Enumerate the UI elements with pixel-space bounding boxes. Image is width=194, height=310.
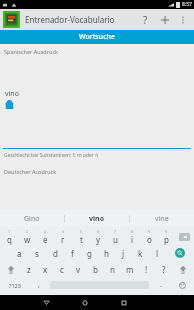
staticText: Wortsuche	[79, 32, 116, 42]
staticText: p	[164, 234, 169, 245]
staticText: 0	[165, 229, 168, 234]
button[interactable]: Wortsuche	[0, 30, 194, 44]
button[interactable]: 9	[141, 229, 158, 245]
button[interactable]: b	[87, 261, 104, 277]
staticText: h	[104, 248, 109, 259]
button[interactable]: 6	[90, 229, 107, 245]
button[interactable]: g	[81, 245, 98, 261]
button[interactable]: h	[98, 245, 115, 261]
button[interactable]: f	[64, 245, 81, 261]
staticText: 4	[62, 229, 65, 234]
button[interactable]: !	[138, 261, 155, 277]
staticText: 2	[26, 229, 29, 234]
staticText: s	[35, 248, 39, 259]
button[interactable]: .	[151, 277, 170, 293]
staticText: vino	[5, 89, 19, 99]
button[interactable]: 1	[0, 229, 18, 245]
button[interactable]: Back	[34, 295, 58, 310]
button[interactable]: z	[21, 261, 37, 277]
staticText: ?123	[9, 282, 21, 289]
staticText: Geschlecht bei Substantiven: f, m oder n	[4, 152, 99, 159]
button[interactable]: ,	[29, 277, 48, 293]
button[interactable]: n	[104, 261, 121, 277]
staticText: ?	[143, 13, 148, 27]
staticText: vine	[155, 214, 169, 224]
staticText: k	[138, 248, 143, 259]
staticText: Gino	[24, 214, 40, 224]
staticText: ,	[38, 280, 40, 290]
button[interactable]: l	[149, 245, 166, 261]
button[interactable]: 0	[158, 229, 175, 245]
staticText: 7	[114, 229, 117, 234]
button[interactable]: Emoji	[170, 277, 194, 293]
staticText: j	[122, 248, 125, 259]
staticText: c	[60, 264, 64, 275]
staticText: Deutscher Ausdruck	[4, 168, 57, 175]
button[interactable]: Search	[166, 245, 194, 261]
button[interactable]: 2	[18, 229, 36, 245]
staticText: l	[156, 248, 159, 259]
button[interactable]: Recent apps	[112, 295, 136, 310]
button[interactable]: Gino	[0, 210, 64, 227]
button[interactable]: a	[10, 245, 28, 261]
button[interactable]: ?123	[0, 277, 29, 293]
staticText: 1	[8, 229, 11, 234]
button[interactable]: Help	[135, 10, 155, 30]
button[interactable]: m	[121, 261, 138, 277]
button[interactable]: d	[46, 245, 64, 261]
button[interactable]: ?	[155, 261, 172, 277]
staticText: m	[126, 264, 134, 275]
staticText: .	[160, 280, 162, 290]
button[interactable]: vino	[5, 89, 19, 110]
button[interactable]: x	[37, 261, 53, 277]
staticText: x	[43, 264, 48, 275]
staticText: 9	[148, 229, 151, 234]
staticText: f	[71, 248, 74, 259]
staticText: v	[76, 264, 81, 275]
button[interactable]: Shift	[0, 261, 21, 277]
button[interactable]: Backspace	[176, 230, 193, 244]
staticText: 8:57	[182, 1, 192, 8]
staticText: vino	[89, 214, 105, 224]
button[interactable]: 4	[54, 229, 72, 245]
button[interactable]: s	[28, 245, 46, 261]
button[interactable]: 5	[72, 229, 90, 245]
staticText: b	[93, 264, 98, 275]
staticText: i	[131, 234, 134, 245]
button[interactable]: Home	[73, 295, 97, 310]
button[interactable]: 7	[107, 229, 124, 245]
staticText: 6	[97, 229, 100, 234]
button[interactable]: j	[115, 245, 132, 261]
button[interactable]: vine	[130, 210, 194, 227]
staticText: Spanischer Ausdruck	[4, 48, 58, 55]
button[interactable]: k	[132, 245, 149, 261]
staticText: t	[80, 234, 83, 245]
staticText: r	[61, 234, 65, 245]
button[interactable]: v	[70, 261, 87, 277]
staticText: ?	[162, 264, 166, 275]
staticText: d	[53, 248, 58, 259]
staticText: q	[7, 234, 12, 245]
staticText: 5	[80, 229, 83, 234]
button[interactable]: c	[53, 261, 70, 277]
staticText: n	[110, 264, 115, 275]
staticText: Entrenador-Vocabulario	[25, 14, 115, 25]
button[interactable]: Add	[155, 10, 175, 30]
staticText: z	[27, 264, 31, 275]
staticText: o	[147, 234, 152, 245]
button[interactable]: 8	[124, 229, 141, 245]
staticText: 3	[44, 229, 47, 234]
staticText: e	[43, 234, 48, 245]
staticText: a	[17, 248, 22, 259]
button[interactable]: Shift	[172, 261, 194, 277]
button[interactable]: vino	[65, 210, 129, 227]
button[interactable]: More options	[175, 12, 191, 28]
staticText: !	[145, 264, 148, 275]
staticText: u	[113, 234, 118, 245]
staticText: g	[87, 248, 92, 259]
staticText: 8	[131, 229, 134, 234]
staticText: y	[96, 234, 101, 245]
staticText: w	[24, 234, 31, 245]
button[interactable]: 3	[36, 229, 54, 245]
